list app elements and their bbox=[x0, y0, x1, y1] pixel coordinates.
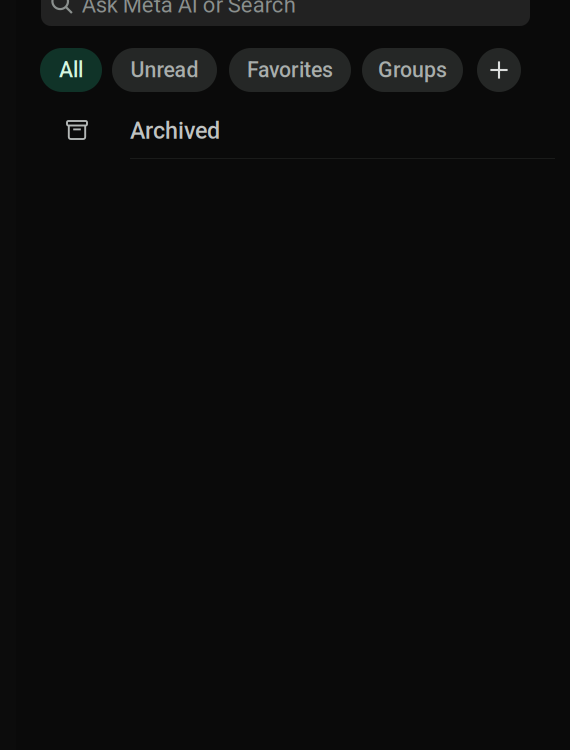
button[interactable]: Archived bbox=[0, 0, 570, 750]
staticText: Unread bbox=[130, 57, 198, 82]
button[interactable]: Unread bbox=[112, 48, 217, 92]
button[interactable]: Ask Meta AI or Search bbox=[41, 0, 530, 26]
button[interactable]: Favorites bbox=[229, 48, 351, 92]
button[interactable]: Groups bbox=[362, 48, 463, 92]
button[interactable]: New list bbox=[477, 48, 521, 92]
button[interactable]: All bbox=[40, 48, 102, 92]
staticText: Favorites bbox=[247, 57, 333, 82]
staticText: Archived bbox=[130, 117, 220, 144]
staticText: Groups bbox=[378, 57, 447, 82]
staticText: Ask Meta AI or Search bbox=[82, 0, 296, 18]
staticText: All bbox=[59, 57, 83, 82]
